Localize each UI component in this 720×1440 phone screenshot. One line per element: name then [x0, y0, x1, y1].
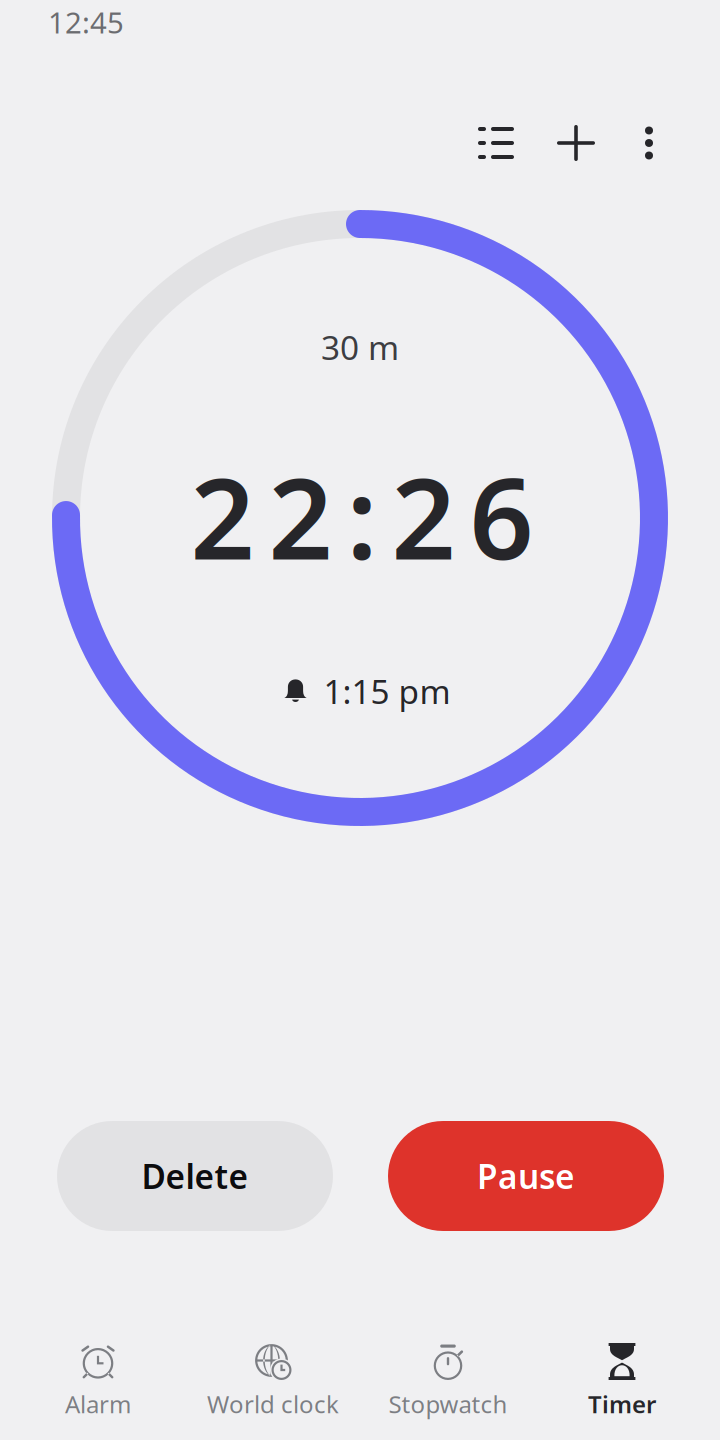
staticText: 1:15 pm: [323, 669, 450, 713]
staticText: Alarm: [65, 1388, 131, 1420]
button[interactable]: Delete: [57, 1121, 333, 1231]
staticText: 12:45: [48, 2, 124, 41]
button[interactable]: Add timer: [540, 107, 612, 179]
button[interactable]: Stopwatch: [360, 1339, 535, 1419]
button[interactable]: Timer: [534, 1339, 709, 1419]
staticText: Pause: [477, 1154, 575, 1198]
staticText: 30 m: [321, 325, 399, 369]
staticText: Stopwatch: [388, 1388, 507, 1420]
staticText: 22:26: [190, 442, 533, 590]
staticText: Timer: [588, 1388, 656, 1420]
button[interactable]: Pause: [388, 1121, 664, 1231]
staticText: Delete: [141, 1154, 248, 1198]
button[interactable]: More options: [619, 107, 679, 179]
button[interactable]: World clock: [185, 1339, 360, 1419]
button[interactable]: Timer list: [460, 107, 532, 179]
button[interactable]: Alarm: [10, 1339, 185, 1419]
staticText: World clock: [207, 1388, 339, 1420]
